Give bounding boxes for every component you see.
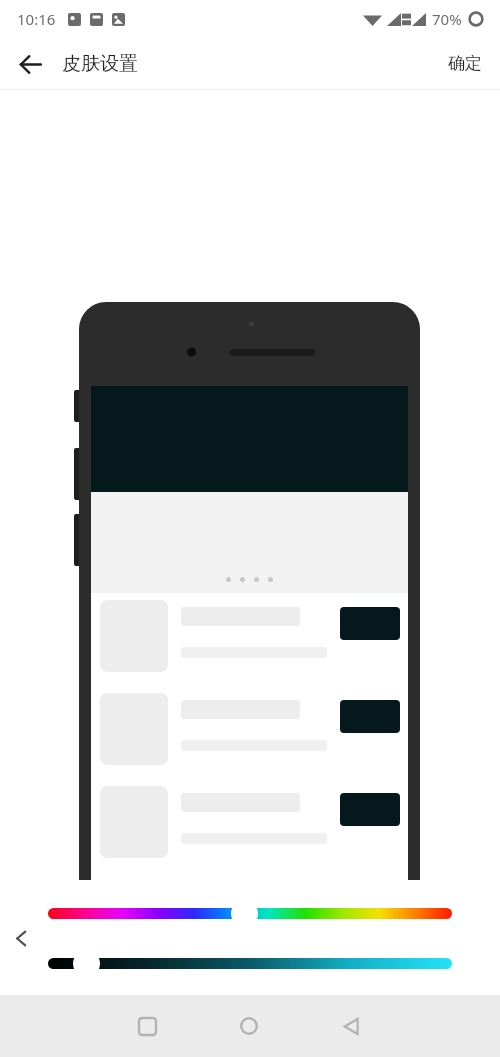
- staticText: 确定: [448, 53, 482, 74]
- button[interactable]: Action: [340, 700, 400, 733]
- staticText: 70%: [432, 9, 462, 29]
- button[interactable]: Action: [100, 786, 400, 858]
- button[interactable]: Home: [220, 997, 278, 1055]
- button[interactable]: Action: [100, 693, 400, 765]
- button[interactable]: 确定: [430, 41, 500, 86]
- staticText: 10:16: [17, 9, 56, 29]
- button[interactable]: Previous: [3, 920, 39, 956]
- button[interactable]: Action: [340, 607, 400, 640]
- button[interactable]: Recent apps: [118, 997, 176, 1055]
- button[interactable]: [48, 900, 452, 927]
- button[interactable]: Back: [8, 42, 52, 86]
- button[interactable]: Action: [340, 793, 400, 826]
- button[interactable]: Action: [100, 600, 400, 672]
- staticText: 皮肤设置: [62, 52, 138, 76]
- button[interactable]: [48, 950, 452, 977]
- button[interactable]: Back: [322, 997, 380, 1055]
